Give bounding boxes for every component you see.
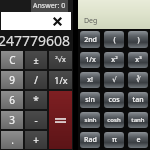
- button[interactable]: Answer: 0: [33, 1, 66, 11]
- staticText: C: [9, 53, 16, 67]
- button[interactable]: .: [1, 131, 23, 149]
- button[interactable]: sin: [80, 92, 100, 108]
- staticText: .: [11, 133, 14, 147]
- button[interactable]: (: [104, 31, 124, 48]
- staticText: cos: [108, 95, 120, 105]
- button[interactable]: sinh: [80, 112, 100, 128]
- button[interactable]: Equals: [49, 91, 72, 149]
- button[interactable]: -: [25, 111, 47, 129]
- button[interactable]: cos: [104, 92, 124, 108]
- staticText: Rad: [84, 135, 97, 145]
- button[interactable]: √: [104, 72, 124, 88]
- button[interactable]: x!: [80, 72, 100, 88]
- button[interactable]: Clear: [1, 12, 71, 30]
- button[interactable]: 6: [1, 91, 23, 109]
- button[interactable]: /: [25, 71, 47, 89]
- staticText: 3: [9, 113, 15, 127]
- button[interactable]: Clear: [51, 15, 64, 28]
- staticText: 1/x: [85, 55, 96, 65]
- button[interactable]: ±: [25, 51, 47, 69]
- button[interactable]: 3: [1, 111, 23, 129]
- staticText: 1/x: [54, 74, 68, 86]
- button[interactable]: +: [25, 131, 47, 149]
- button[interactable]: C: [1, 51, 23, 69]
- staticText: /: [34, 73, 38, 87]
- button[interactable]: ²√x: [49, 51, 72, 69]
- staticText: ²√x: [55, 55, 66, 65]
- staticText: *: [33, 93, 39, 107]
- staticText: 2nd: [84, 35, 97, 45]
- button[interactable]: e: [128, 132, 148, 148]
- button[interactable]: 1/x: [80, 52, 100, 68]
- staticText: cosh: [107, 116, 121, 124]
- button[interactable]: tanh: [128, 112, 148, 128]
- staticText: e: [136, 135, 141, 145]
- staticText: ): [137, 35, 140, 45]
- button[interactable]: π: [104, 132, 124, 148]
- staticText: ±: [33, 54, 39, 66]
- staticText: (: [113, 35, 116, 45]
- button[interactable]: Rad: [80, 132, 100, 148]
- button[interactable]: 9: [1, 71, 23, 89]
- button[interactable]: x²: [104, 52, 124, 68]
- button[interactable]: x³: [128, 52, 148, 68]
- staticText: ∛: [136, 76, 141, 84]
- staticText: 247779608: [0, 31, 71, 50]
- staticText: 9: [9, 73, 15, 87]
- staticText: +: [33, 133, 39, 147]
- staticText: √: [112, 76, 117, 84]
- staticText: x²: [111, 55, 118, 65]
- button[interactable]: 1/x: [49, 71, 72, 89]
- staticText: x!: [87, 75, 93, 85]
- staticText: 6: [9, 93, 15, 107]
- staticText: sin: [85, 95, 95, 105]
- staticText: Deg: [84, 16, 98, 26]
- staticText: -: [34, 113, 38, 127]
- staticText: x³: [135, 55, 142, 65]
- button[interactable]: ): [128, 31, 148, 48]
- button[interactable]: cosh: [104, 112, 124, 128]
- staticText: tanh: [131, 116, 145, 124]
- staticText: tan: [132, 95, 144, 105]
- staticText: π: [112, 135, 117, 145]
- button[interactable]: ∛: [128, 72, 148, 88]
- staticText: Answer: 0: [33, 1, 66, 11]
- staticText: sinh: [84, 116, 97, 124]
- button[interactable]: *: [25, 91, 47, 109]
- button[interactable]: tan: [128, 92, 148, 108]
- button[interactable]: 2nd: [80, 31, 100, 48]
